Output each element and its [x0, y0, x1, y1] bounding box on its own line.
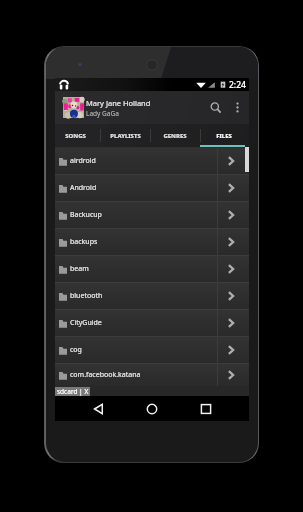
button[interactable]: Recents	[192, 397, 219, 421]
button[interactable]: cog	[55, 337, 249, 363]
button[interactable]: GENRES	[150, 124, 200, 147]
staticText: Backucup	[70, 210, 102, 220]
staticText: FILES	[216, 132, 232, 140]
button[interactable]: backups	[55, 229, 249, 255]
button[interactable]: sdcard | X	[55, 387, 90, 396]
button[interactable]: CityGuide	[55, 310, 249, 336]
button[interactable]: com.facebook.katana	[55, 364, 249, 386]
staticText: CityGuide	[70, 318, 102, 328]
staticText: backups	[70, 237, 98, 247]
button[interactable]: SONGS	[50, 124, 100, 147]
button[interactable]: Home	[138, 397, 165, 421]
staticText: cog	[70, 345, 82, 355]
button[interactable]: Backucup	[55, 202, 249, 228]
staticText: bluetooth	[70, 291, 103, 301]
button[interactable]: Search	[204, 91, 228, 124]
button[interactable]: Android	[55, 175, 249, 201]
staticText: PLAYLISTS	[110, 132, 141, 140]
staticText: Mary Jane Holland	[86, 98, 151, 108]
button[interactable]: FILES	[200, 124, 248, 147]
staticText: SONGS	[65, 132, 86, 140]
button[interactable]: bluetooth	[55, 283, 249, 309]
staticText: 2:24	[229, 79, 246, 91]
staticText: com.facebook.katana	[70, 370, 141, 380]
staticText: sdcard | X	[57, 387, 89, 396]
button[interactable]: airdroid	[55, 148, 249, 174]
button[interactable]: beam	[55, 256, 249, 282]
staticText: airdroid	[70, 156, 96, 166]
staticText: beam	[70, 264, 89, 274]
staticText: GENRES	[163, 132, 187, 140]
button[interactable]: Back	[85, 397, 112, 421]
staticText: Lady GaGa	[86, 109, 119, 118]
button[interactable]: PLAYLISTS	[100, 124, 150, 147]
staticText: Android	[70, 183, 97, 193]
button[interactable]: More options	[229, 91, 245, 124]
